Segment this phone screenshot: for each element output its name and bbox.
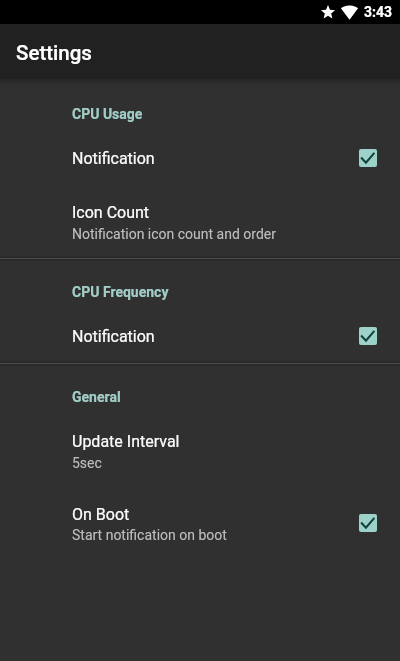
staticText: CPU Frequency	[72, 284, 169, 300]
button[interactable]: Settings	[0, 24, 400, 79]
button[interactable]: Toggle setting	[359, 514, 377, 532]
button[interactable]: Notification	[0, 310, 400, 359]
staticText: Notification	[72, 327, 155, 346]
staticText: Settings	[16, 41, 92, 65]
button[interactable]: Toggle setting	[359, 149, 377, 167]
button[interactable]: Notification	[0, 132, 400, 181]
staticText: Notification	[72, 149, 155, 168]
staticText: Update Interval	[72, 432, 180, 451]
staticText: 3:43	[364, 4, 393, 20]
staticText: Notification icon count and order	[72, 226, 276, 242]
staticText: Start notification on boot	[72, 527, 227, 543]
staticText: 5sec	[72, 455, 102, 471]
button[interactable]: Update Interval	[0, 416, 400, 474]
button[interactable]: Icon Count	[0, 187, 400, 247]
staticText: Icon Count	[72, 203, 150, 222]
staticText: General	[72, 389, 121, 405]
button[interactable]: On Boot	[0, 489, 400, 547]
staticText: CPU Usage	[72, 106, 143, 122]
staticText: On Boot	[72, 505, 130, 524]
other: Wi-Fi signal	[341, 5, 358, 20]
other: Starred	[320, 5, 336, 19]
button[interactable]: Toggle setting	[359, 327, 377, 345]
